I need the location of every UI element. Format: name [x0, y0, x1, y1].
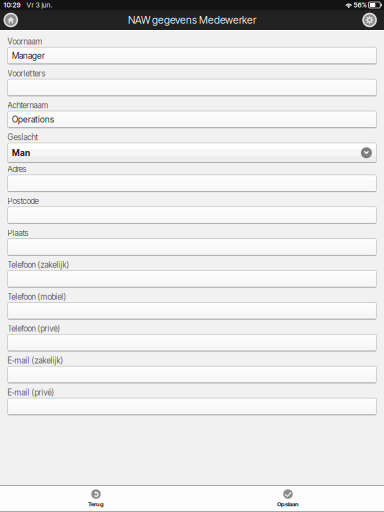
- staticText: Man: [12, 148, 30, 158]
- button[interactable]: Manager: [7, 47, 376, 64]
- staticText: 10:29: [4, 1, 21, 9]
- staticText: Vr 3 jun.: [21, 1, 53, 9]
- staticText: Telefoon (privé): [7, 324, 60, 334]
- button[interactable]: Home: [1, 10, 20, 30]
- staticText: Adres: [7, 164, 26, 174]
- button[interactable]: Settings: [360, 10, 379, 30]
- staticText: Manager: [12, 50, 45, 61]
- button[interactable]: [7, 398, 376, 415]
- staticText: Telefoon (zakelijk): [7, 260, 69, 270]
- button[interactable]: [7, 270, 376, 287]
- button[interactable]: Operations: [7, 111, 376, 128]
- staticText: E-mail (privé): [7, 388, 54, 397]
- staticText: NAW gegevens Medewerker: [128, 14, 256, 26]
- staticText: Voorletters: [7, 69, 45, 78]
- staticText: Postcode: [7, 196, 38, 206]
- button[interactable]: Man: [7, 143, 376, 163]
- button[interactable]: [7, 175, 376, 192]
- staticText: Voornaam: [7, 37, 42, 46]
- button[interactable]: [7, 302, 376, 319]
- staticText: Telefoon (mobiel): [7, 292, 66, 302]
- button[interactable]: [7, 207, 376, 224]
- button[interactable]: [7, 79, 376, 96]
- button[interactable]: [7, 334, 376, 351]
- staticText: Achternaam: [7, 101, 48, 110]
- staticText: Geslacht: [7, 132, 38, 142]
- staticText: E-mail (zakelijk): [7, 356, 63, 365]
- staticText: Terug: [88, 500, 104, 508]
- staticText: 56%: [352, 1, 366, 9]
- button[interactable]: [7, 366, 376, 383]
- staticText: Opslaan: [277, 500, 299, 508]
- button[interactable]: Opslaan: [240, 487, 336, 510]
- staticText: Plaats: [7, 228, 28, 238]
- button[interactable]: [7, 239, 376, 256]
- staticText: Operations: [12, 114, 54, 125]
- button[interactable]: Terug: [48, 487, 144, 510]
